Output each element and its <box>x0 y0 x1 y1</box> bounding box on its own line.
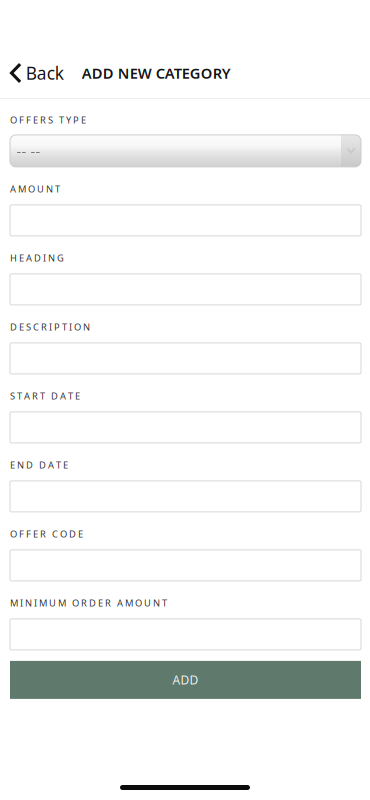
staticText: ADD NEW CATEGORY <box>82 63 231 83</box>
button[interactable]: Back <box>0 62 70 84</box>
staticText: D E S C R I P T I O N <box>10 321 90 333</box>
staticText: ADD <box>172 672 198 688</box>
staticText: A M O U N T <box>10 183 60 195</box>
staticText: S T A R T D A T E <box>10 390 80 402</box>
staticText: E N D D A T E <box>10 459 68 471</box>
staticText: M I N I M U M O R D E R A M O U N T <box>10 597 167 609</box>
staticText: O F F E R S T Y P E <box>10 114 86 126</box>
button[interactable]: -- -- <box>10 135 361 167</box>
staticText: -- -- <box>16 141 40 161</box>
staticText: O F F E R C O D E <box>10 528 83 540</box>
button[interactable]: ADD <box>10 661 361 699</box>
staticText: H E A D I N G <box>10 252 64 264</box>
staticText: Back <box>26 61 64 84</box>
